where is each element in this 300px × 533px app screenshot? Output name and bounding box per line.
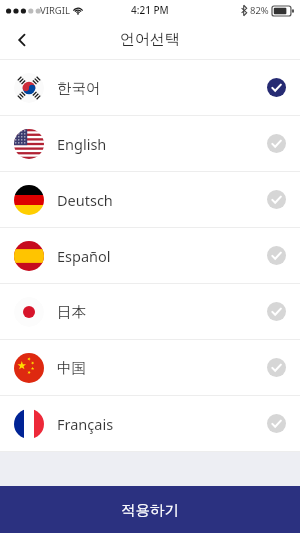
staticText: VIRGIL — [40, 4, 70, 17]
button[interactable]: 中国 — [0, 340, 300, 396]
button[interactable]: English — [0, 116, 300, 172]
staticText: English — [57, 134, 107, 154]
staticText: 언어선택 — [120, 30, 180, 49]
staticText: Español — [57, 246, 111, 266]
button[interactable]: Español — [0, 228, 300, 284]
button[interactable]: Back — [0, 20, 44, 59]
button[interactable]: 한국어 — [0, 60, 300, 116]
staticText: Français — [57, 414, 114, 434]
staticText: 4:21 PM — [131, 3, 169, 17]
button[interactable]: Deutsch — [0, 172, 300, 228]
staticText: Deutsch — [57, 190, 113, 210]
button[interactable]: Français — [0, 396, 300, 452]
staticText: 적용하기 — [121, 501, 179, 519]
staticText: 82% — [250, 4, 269, 17]
staticText: 中国 — [57, 359, 86, 377]
staticText: 日本 — [57, 303, 86, 321]
button[interactable]: 적용하기 — [0, 486, 300, 533]
staticText: 한국어 — [57, 79, 101, 97]
button[interactable]: 日本 — [0, 284, 300, 340]
